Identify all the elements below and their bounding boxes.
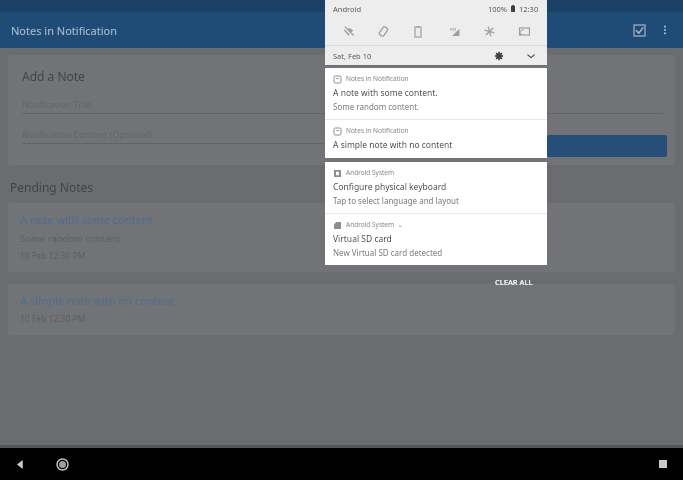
button[interactable]: Settings <box>491 48 507 64</box>
staticText: Add a Note <box>22 68 85 84</box>
staticText: Sat, Feb 10 <box>333 51 372 61</box>
staticText: Notes in Notification <box>346 126 409 135</box>
staticText: Notification Content (Optional) <box>22 128 152 140</box>
button[interactable]: Cast screen <box>511 19 537 43</box>
button[interactable]: Notes in Notification <box>325 68 547 119</box>
staticText: 10 Feb 12:30 PM <box>20 313 86 325</box>
staticText: Android System ⌄ <box>346 220 403 229</box>
button[interactable]: Add a Note <box>8 55 675 165</box>
staticText: Notes in Notification <box>346 74 409 83</box>
button[interactable]: Battery saver <box>405 19 431 43</box>
staticText: Tap to select language and layout <box>333 195 459 206</box>
staticText: Notification Title <box>22 98 92 110</box>
button[interactable]: Auto-rotate <box>370 19 396 43</box>
button[interactable]: Notes in Notification <box>325 120 547 158</box>
button[interactable]: A simple note with no content <box>8 284 675 335</box>
staticText: A note with some content. <box>333 87 438 99</box>
staticText: New Virtual SD card detected <box>333 247 443 258</box>
button[interactable]: Android System <box>325 162 547 213</box>
staticText: A simple note with no content <box>333 139 453 151</box>
button[interactable]: CLEAR ALL <box>489 274 539 290</box>
button[interactable]: Wi-Fi off <box>335 19 361 43</box>
button[interactable]: Flashlight <box>476 19 502 43</box>
staticText: Android <box>333 4 362 14</box>
staticText: Virtual SD card <box>333 233 392 245</box>
staticText: Configure physical keyboard <box>333 181 447 193</box>
button[interactable]: Home <box>52 454 72 474</box>
button[interactable]: Mobile data <box>441 19 467 43</box>
staticText: A note with some content. <box>20 212 156 227</box>
button[interactable]: Recent apps <box>653 454 673 474</box>
button[interactable]: Back <box>10 454 30 474</box>
staticText: Notes in Notification <box>11 23 117 38</box>
button[interactable]: More options <box>653 18 677 42</box>
button[interactable]: Android System ⌄ <box>325 214 547 265</box>
staticText: Android System <box>346 168 395 177</box>
staticText: Pending Notes <box>10 179 94 195</box>
staticText: Some random content. <box>333 101 420 112</box>
staticText: 100% <box>488 4 508 14</box>
button[interactable]: Select all <box>627 18 651 42</box>
button[interactable]: A note with some content. <box>8 203 675 272</box>
button[interactable]: Expand <box>523 48 539 64</box>
staticText: 10 Feb 12:30 PM <box>20 250 86 262</box>
staticText: CLEAR ALL <box>495 277 533 287</box>
staticText: 12:30 <box>519 4 539 14</box>
staticText: A simple note with no content <box>20 293 175 308</box>
staticText: Some random content. <box>20 232 123 245</box>
